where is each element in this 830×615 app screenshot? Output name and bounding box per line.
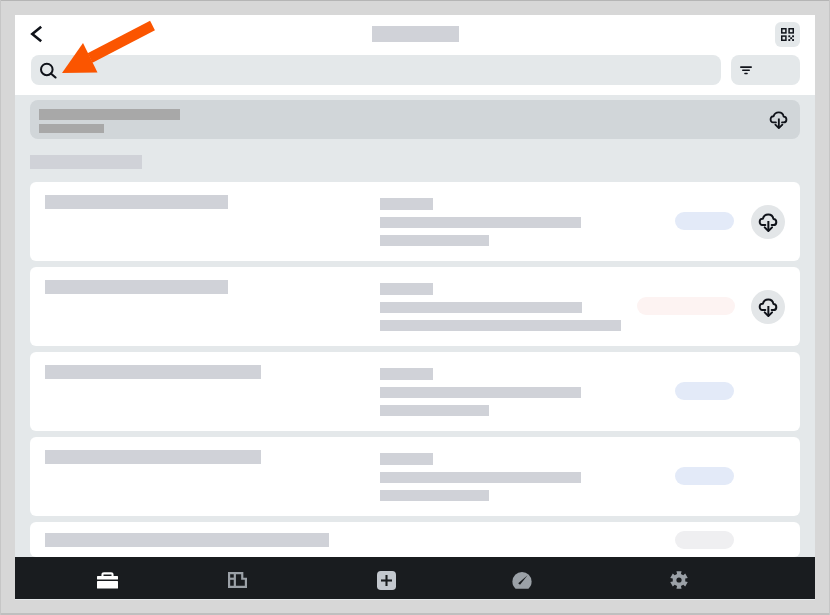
- button[interactable]: Toolbox: [81, 562, 133, 598]
- button[interactable]: [30, 437, 800, 516]
- button[interactable]: [30, 522, 800, 557]
- button[interactable]: [31, 55, 721, 85]
- button[interactable]: Download: [30, 267, 800, 346]
- button[interactable]: Download: [751, 205, 785, 239]
- button[interactable]: Settings: [653, 562, 705, 598]
- button[interactable]: Back: [18, 16, 54, 52]
- button[interactable]: Filter: [731, 55, 800, 85]
- button[interactable]: Dashboard: [496, 562, 548, 598]
- button[interactable]: Add: [360, 562, 412, 598]
- button[interactable]: Download all: [30, 100, 800, 139]
- button[interactable]: Download: [30, 182, 800, 261]
- button[interactable]: Download all: [762, 104, 794, 135]
- button[interactable]: Floor plan: [211, 562, 263, 598]
- button[interactable]: [30, 352, 800, 431]
- button[interactable]: Scan QR code: [775, 22, 800, 47]
- button[interactable]: Download: [751, 290, 785, 324]
